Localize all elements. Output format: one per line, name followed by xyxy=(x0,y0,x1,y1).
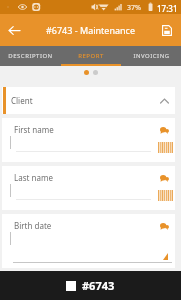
button[interactable]: DESCRIPTION xyxy=(0,46,61,66)
button[interactable]: First name xyxy=(2,118,175,162)
staticText: Birth date xyxy=(14,220,52,231)
staticText: 37% xyxy=(127,3,141,13)
staticText: #6743 - Maintenance xyxy=(46,24,135,36)
button[interactable]: Comments xyxy=(157,171,172,186)
button[interactable]: Back xyxy=(0,16,28,44)
staticText: REPORT xyxy=(78,52,104,60)
staticText: First name xyxy=(14,124,54,135)
button[interactable]: Save xyxy=(153,16,181,44)
button[interactable]: Last name xyxy=(2,166,175,210)
staticText: DESCRIPTION xyxy=(8,52,53,60)
button[interactable]: Collapse xyxy=(155,92,173,110)
button[interactable]: Comments xyxy=(157,219,172,234)
button[interactable]: #6743 xyxy=(0,271,181,300)
staticText: 17:31 xyxy=(157,3,178,14)
button[interactable]: Birth date xyxy=(2,214,175,268)
staticText: Last name xyxy=(14,172,53,183)
staticText: INVOICING xyxy=(133,52,170,60)
button[interactable]: REPORT xyxy=(61,46,121,66)
button[interactable]: Scan barcode xyxy=(158,190,173,201)
button[interactable]: Scan barcode xyxy=(158,142,173,153)
button[interactable]: Comments xyxy=(157,123,172,138)
staticText: #6743 xyxy=(82,278,115,293)
button[interactable]: Client xyxy=(2,87,175,114)
button[interactable]: INVOICING xyxy=(121,46,181,66)
staticText: Client xyxy=(11,95,33,106)
